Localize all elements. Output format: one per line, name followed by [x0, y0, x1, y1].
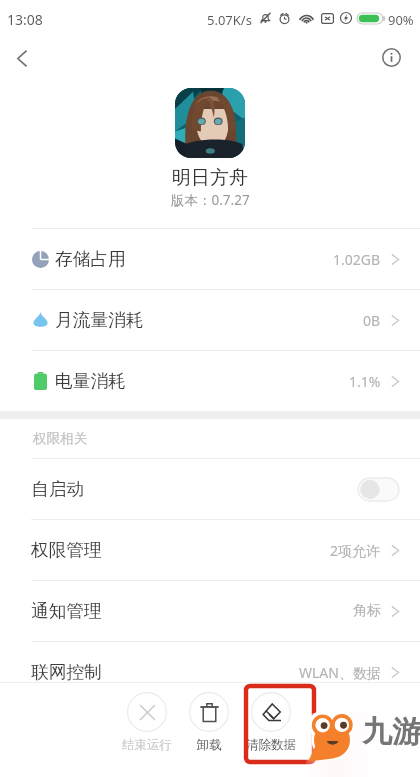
staticText: 卸载: [197, 737, 222, 753]
staticText: WLAN、数据: [299, 663, 381, 682]
button[interactable]: 存储占用: [0, 229, 420, 289]
staticText: 1.1%: [349, 372, 381, 391]
staticText: 结束运行: [122, 737, 172, 753]
button[interactable]: 月流量消耗: [0, 290, 420, 350]
staticText: 1.02GB: [333, 250, 381, 269]
staticText: 0B: [363, 311, 381, 330]
staticText: 联网控制: [31, 661, 102, 683]
staticText: 通知管理: [31, 600, 102, 622]
staticText: 5.07K/s: [207, 11, 252, 29]
staticText: 90%: [388, 11, 414, 29]
button[interactable]: 自启动: [0, 459, 420, 519]
button[interactable]: 权限管理: [0, 520, 420, 580]
staticText: 权限管理: [31, 539, 102, 561]
staticText: 权限相关: [33, 430, 88, 447]
staticText: 电量消耗: [55, 370, 126, 392]
button[interactable]: 卸载: [178, 683, 240, 753]
staticText: 月流量消耗: [55, 309, 144, 331]
staticText: 九游: [362, 713, 420, 751]
button[interactable]: 电量消耗: [0, 351, 420, 411]
staticText: 版本：0.7.27: [171, 191, 250, 209]
button[interactable]: Back: [0, 35, 44, 79]
button[interactable]: 清除数据: [240, 683, 302, 753]
button[interactable]: 结束运行: [116, 683, 178, 753]
staticText: 角标: [353, 602, 381, 620]
staticText: 明日方舟: [172, 166, 248, 190]
button[interactable]: App info: [369, 35, 413, 79]
staticText: 清除数据: [246, 737, 296, 753]
staticText: 13:08: [7, 10, 43, 29]
button[interactable]: 联网控制: [0, 642, 420, 702]
staticText: 自启动: [31, 478, 85, 500]
staticText: 2项允许: [330, 541, 381, 560]
staticText: 存储占用: [55, 248, 126, 270]
button[interactable]: 通知管理: [0, 581, 420, 641]
